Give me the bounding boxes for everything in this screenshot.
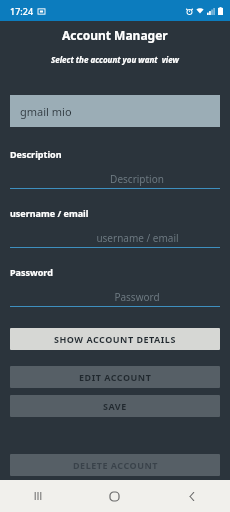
- staticText: SHOW ACCOUNT DETAILS: [54, 333, 176, 345]
- staticText: SAVE: [103, 400, 127, 412]
- staticText: Password: [114, 290, 160, 304]
- button[interactable]: SHOW ACCOUNT DETAILS: [10, 328, 220, 350]
- button[interactable]: username / email: [10, 229, 220, 248]
- staticText: EDIT ACCOUNT: [79, 371, 152, 383]
- button[interactable]: Home: [76, 480, 153, 512]
- staticText: 17:24: [10, 5, 34, 17]
- staticText: gmail mio: [20, 104, 72, 119]
- staticText: Password: [10, 266, 53, 278]
- button[interactable]: DELETE ACCOUNT: [10, 454, 220, 476]
- button[interactable]: Description: [10, 170, 220, 189]
- staticText: Select the account you want view: [51, 54, 179, 65]
- staticText: username / email: [10, 207, 89, 219]
- button[interactable]: Recent apps: [0, 480, 76, 512]
- staticText: Description: [110, 172, 164, 186]
- button[interactable]: Password: [10, 288, 220, 307]
- button[interactable]: gmail mio: [10, 95, 220, 127]
- staticText: Description: [10, 148, 62, 160]
- staticText: DELETE ACCOUNT: [73, 459, 158, 471]
- button[interactable]: Back: [153, 480, 230, 512]
- staticText: Account Manager: [62, 27, 168, 43]
- button[interactable]: SAVE: [10, 395, 220, 417]
- button[interactable]: EDIT ACCOUNT: [10, 366, 220, 388]
- staticText: username / email: [96, 231, 179, 245]
